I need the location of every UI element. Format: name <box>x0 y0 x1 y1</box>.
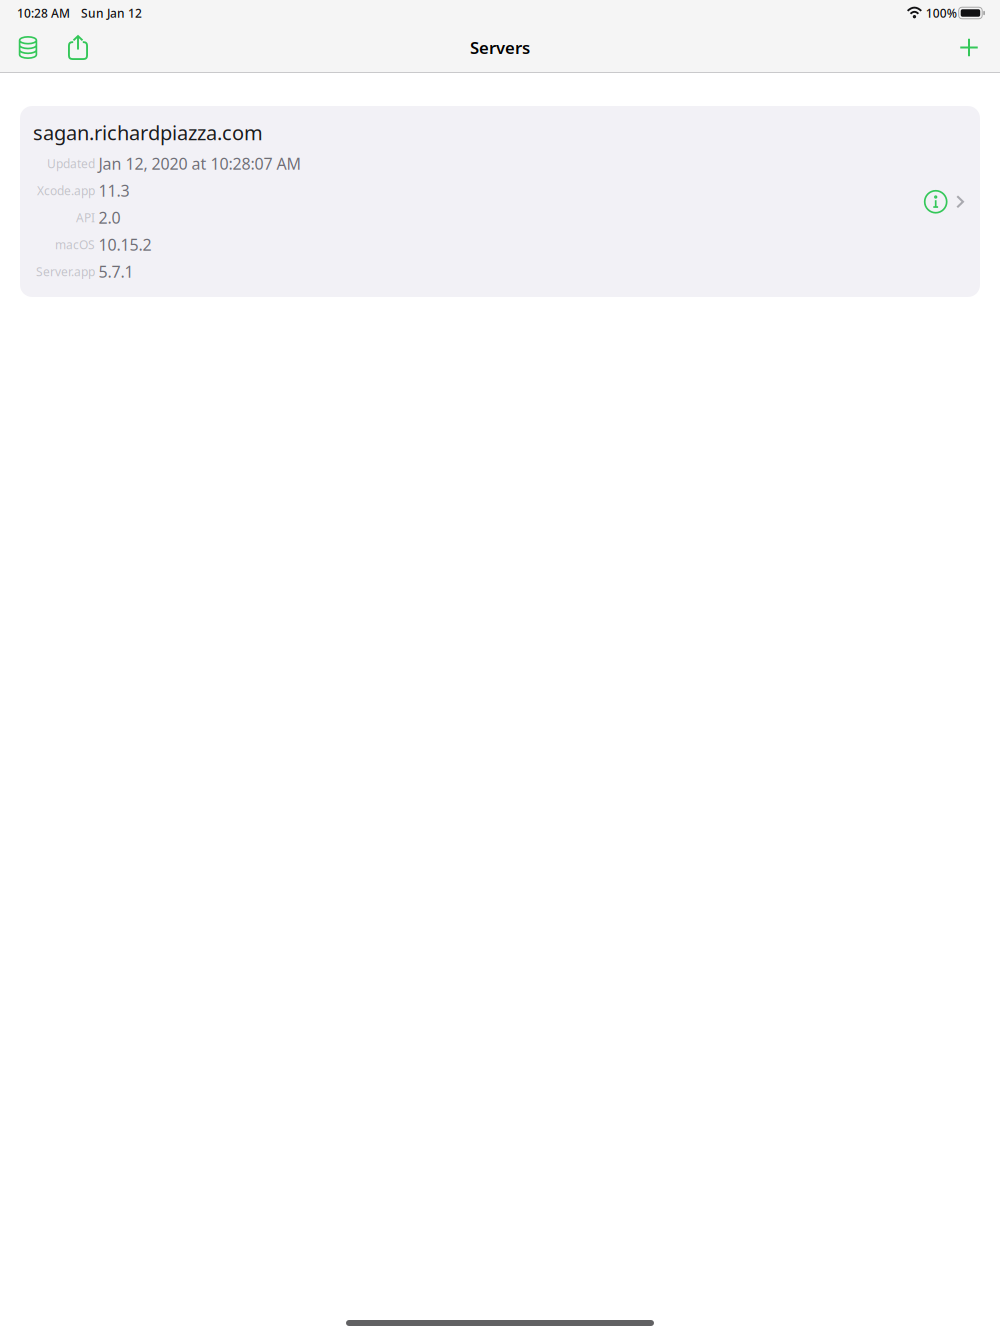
staticText: 10.15.2 <box>98 234 151 255</box>
staticText: sagan.richardpiazza.com <box>33 119 263 146</box>
staticText: API <box>76 209 95 225</box>
staticText: 2.0 <box>98 207 120 228</box>
staticText: Updated <box>47 155 95 171</box>
staticText: 5.7.1 <box>98 261 133 282</box>
staticText: 10:28 AM <box>17 5 70 21</box>
staticText: Jan 12, 2020 at 10:28:07 AM <box>98 153 301 174</box>
button[interactable]: Add server <box>949 27 989 71</box>
staticText: 100% <box>926 5 957 21</box>
button[interactable]: Share <box>58 27 98 71</box>
staticText: Xcode.app <box>37 182 95 198</box>
staticText: 11.3 <box>98 180 129 201</box>
button[interactable]: Server info <box>922 189 947 213</box>
staticText: Sun Jan 12 <box>81 5 142 21</box>
button[interactable]: Database <box>8 27 48 71</box>
staticText: macOS <box>55 236 95 252</box>
staticText: Server.app <box>36 263 95 279</box>
staticText: Servers <box>470 36 530 59</box>
button[interactable]: sagan.richardpiazza.com <box>20 106 980 297</box>
